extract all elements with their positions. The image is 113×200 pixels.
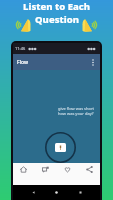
button[interactable]: Messages [34, 163, 56, 176]
button[interactable]: Favorites [56, 163, 78, 176]
staticText: 11:46 [15, 46, 26, 51]
staticText: give flow was short [58, 106, 94, 111]
button[interactable]: Home [53, 189, 60, 196]
staticText: Flow [17, 59, 28, 66]
button[interactable]: More options [90, 57, 96, 67]
staticText: Question [35, 13, 79, 26]
button[interactable]: Share [78, 163, 100, 176]
staticText: Listen to Each [23, 0, 90, 13]
button[interactable]: Record voice answer [45, 132, 76, 163]
button[interactable]: Home [13, 163, 34, 176]
staticText: how was your day? [58, 111, 94, 116]
button[interactable]: Back [30, 189, 37, 196]
button[interactable]: Recent apps [77, 189, 84, 196]
